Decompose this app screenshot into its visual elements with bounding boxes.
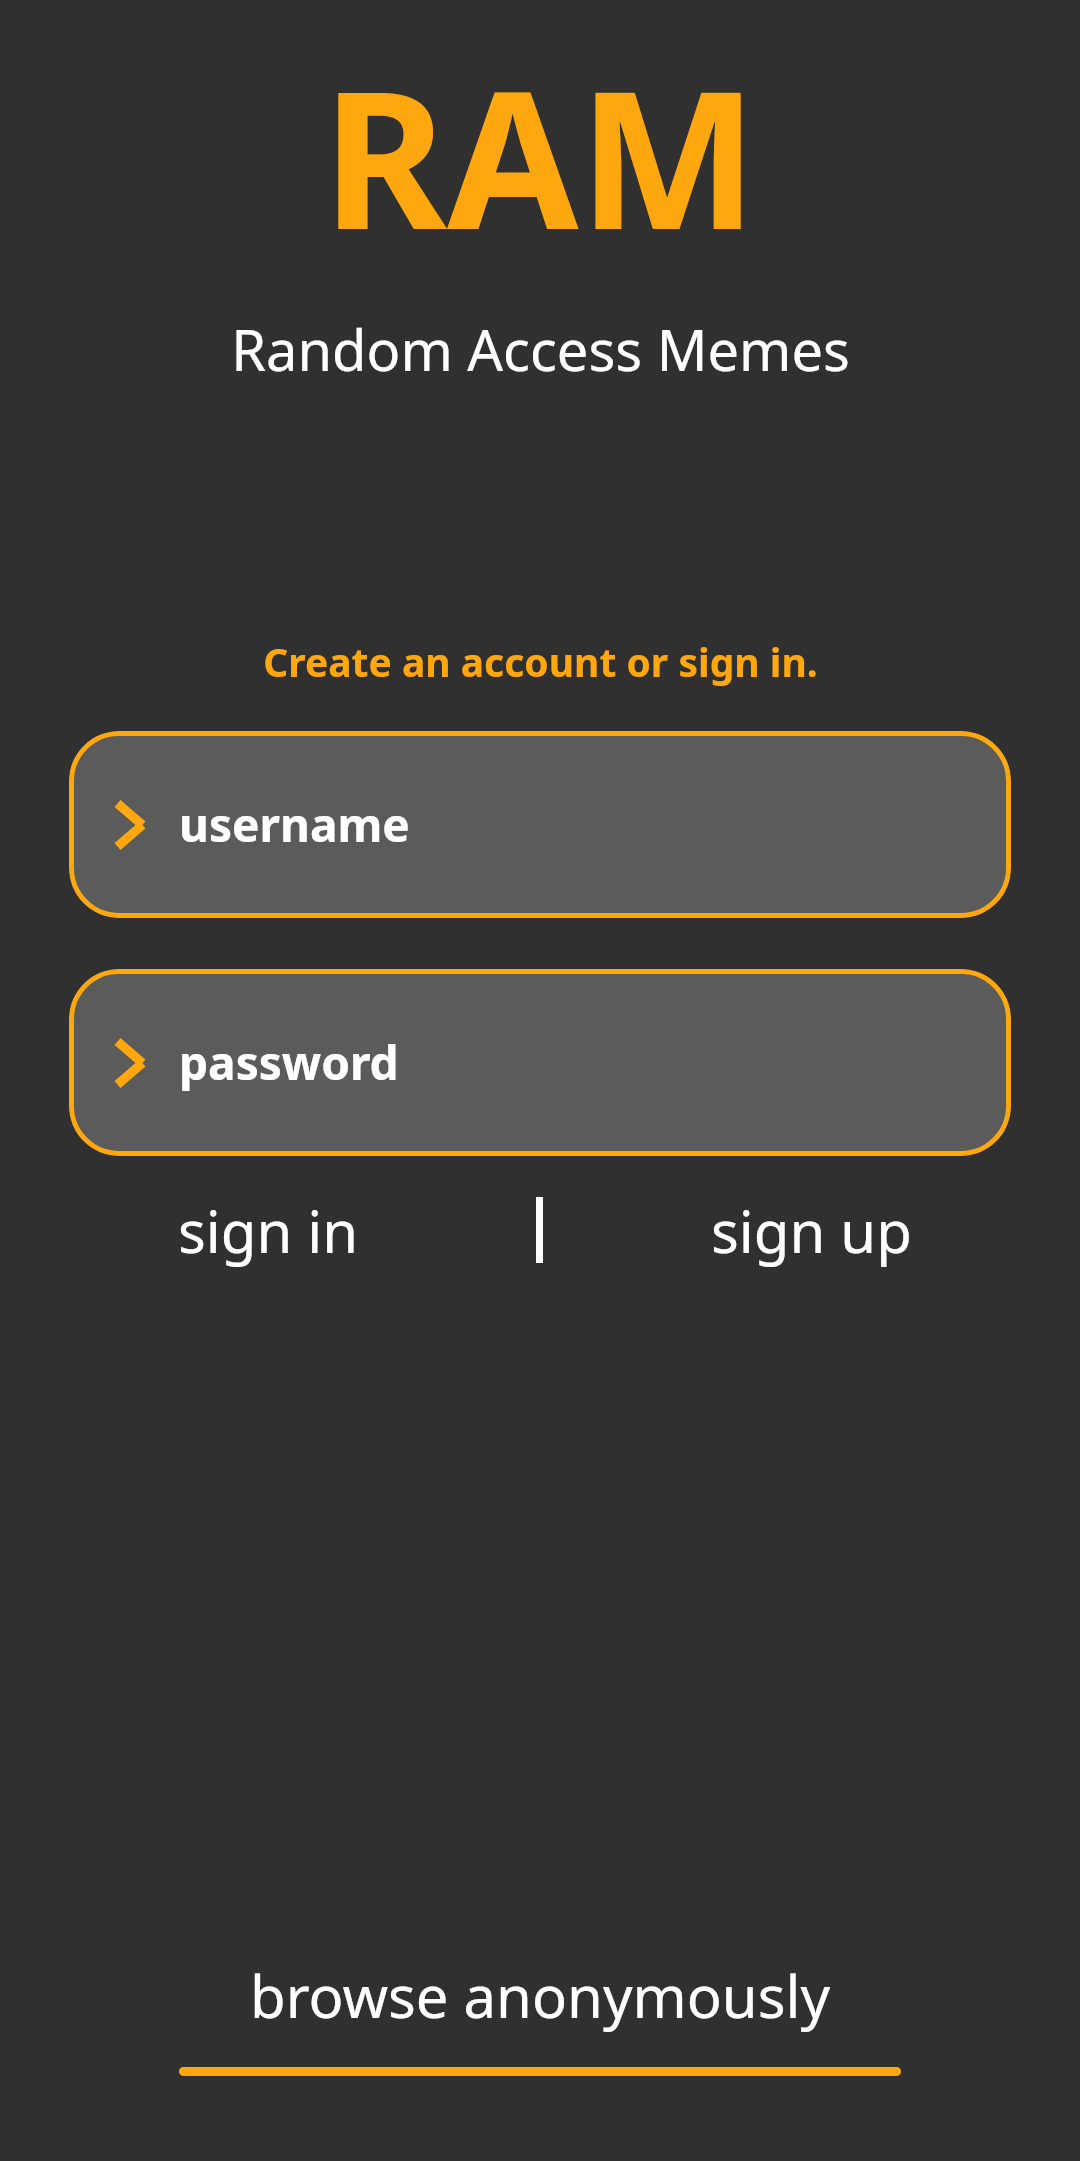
button[interactable]: browse anonymously [0, 1956, 1080, 2076]
button[interactable]: sign up [543, 1180, 1080, 1280]
staticText: Create an account or sign in. [263, 635, 818, 688]
staticText: sign up [711, 1191, 912, 1270]
staticText: sign in [178, 1191, 359, 1270]
other: Enter username [113, 799, 147, 851]
staticText: RAM [322, 26, 758, 285]
button[interactable]: Enter password [69, 969, 1011, 1156]
button[interactable]: Enter username [69, 731, 1011, 918]
staticText: browse anonymously [250, 1956, 830, 2035]
staticText: username [179, 793, 410, 856]
other: Enter password [113, 1037, 147, 1089]
button[interactable]: sign in [0, 1180, 536, 1280]
staticText: password [179, 1031, 399, 1094]
staticText: Random Access Memes [231, 311, 850, 387]
